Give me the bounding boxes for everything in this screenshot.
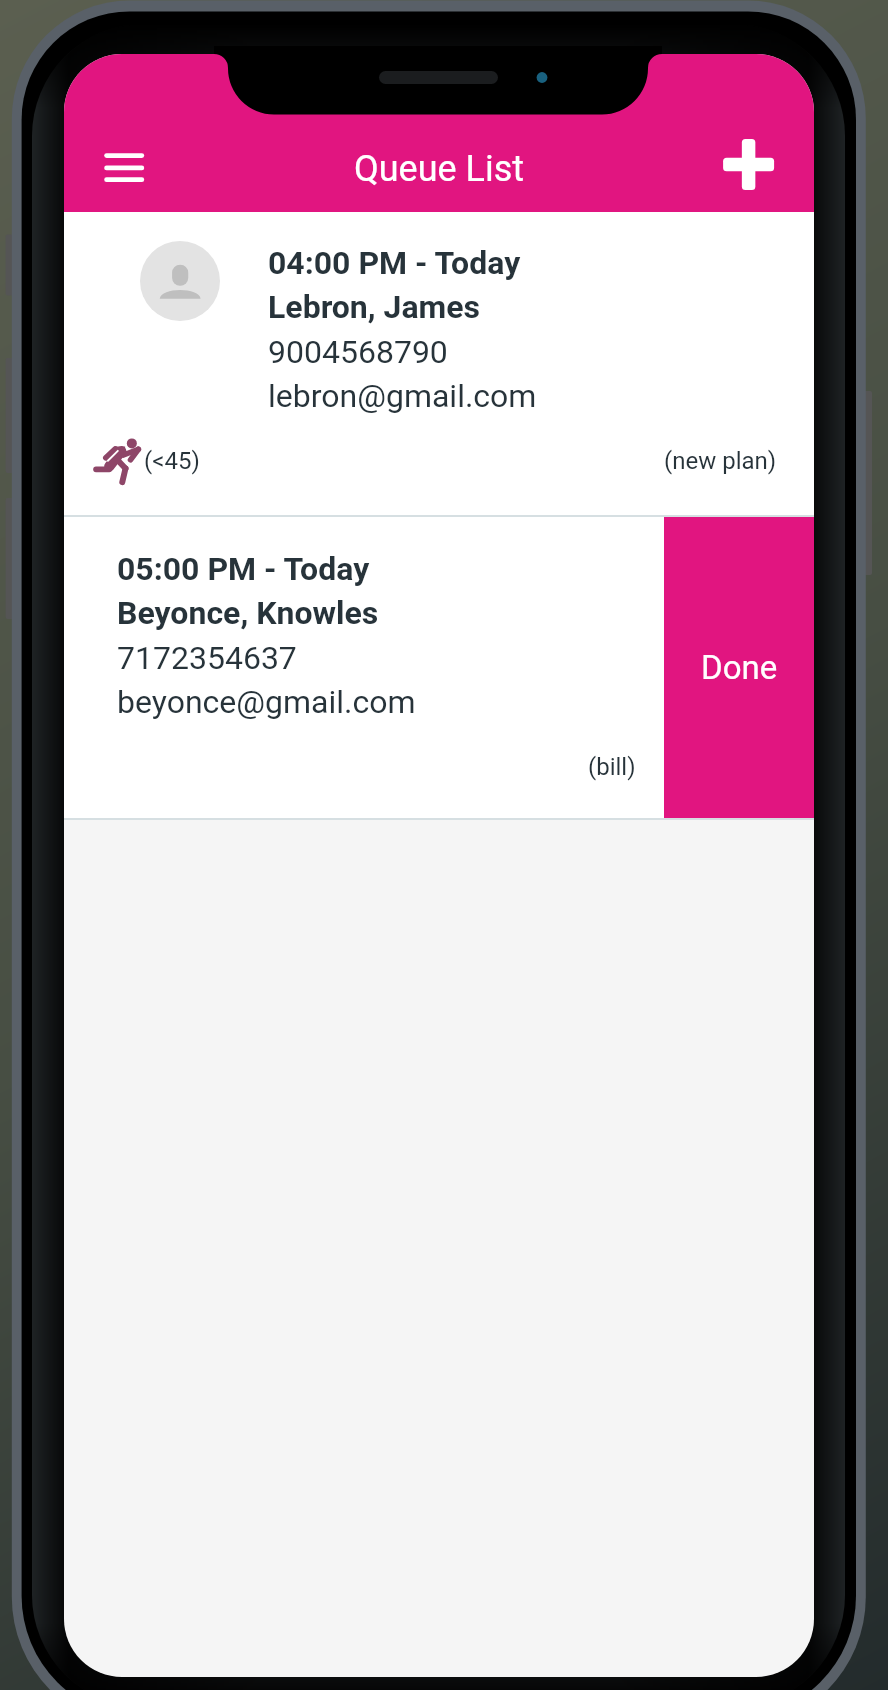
button[interactable]: Done [664,517,814,818]
staticText: 7172354637 [117,639,297,677]
staticText: (bill) [588,753,636,781]
staticText: Lebron, James [268,288,481,326]
staticText: Queue List [354,148,525,190]
button[interactable] [64,212,814,515]
staticText: (<45) [144,447,200,475]
staticText: 05:00 PM - Today [117,550,370,588]
button[interactable]: Add [713,129,785,201]
button[interactable]: Menu [83,121,153,191]
staticText: 9004568790 [268,333,448,371]
staticText: Beyonce, Knowles [117,594,379,632]
staticText: Done [701,648,778,687]
staticText: beyonce@gmail.com [117,683,416,721]
staticText: lebron@gmail.com [268,377,537,415]
button[interactable] [64,517,814,818]
staticText: 04:00 PM - Today [268,244,521,282]
staticText: (new plan) [664,447,777,475]
